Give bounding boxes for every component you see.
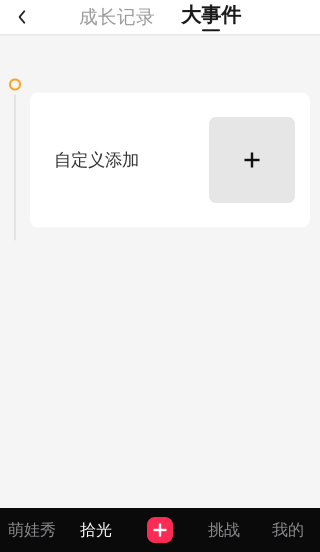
staticText: 萌娃秀 [8,520,56,540]
button[interactable]: 大事件 [181,0,241,34]
button[interactable]: Back [0,0,44,34]
button[interactable]: 我的 [256,508,320,552]
staticText: 拾光 [80,520,112,540]
button[interactable]: 挑战 [192,508,256,552]
button[interactable]: 萌娃秀 [0,508,64,552]
staticText: 我的 [272,520,304,540]
staticText: 成长记录 [79,5,155,28]
button[interactable]: 成长记录 [79,0,155,34]
staticText: 挑战 [208,520,240,540]
button[interactable]: Create post [128,508,192,552]
staticText: 自定义添加 [54,149,139,171]
staticText: 大事件 [181,3,241,27]
button[interactable]: 拾光 [64,508,128,552]
button[interactable]: Add custom milestone [209,117,295,203]
